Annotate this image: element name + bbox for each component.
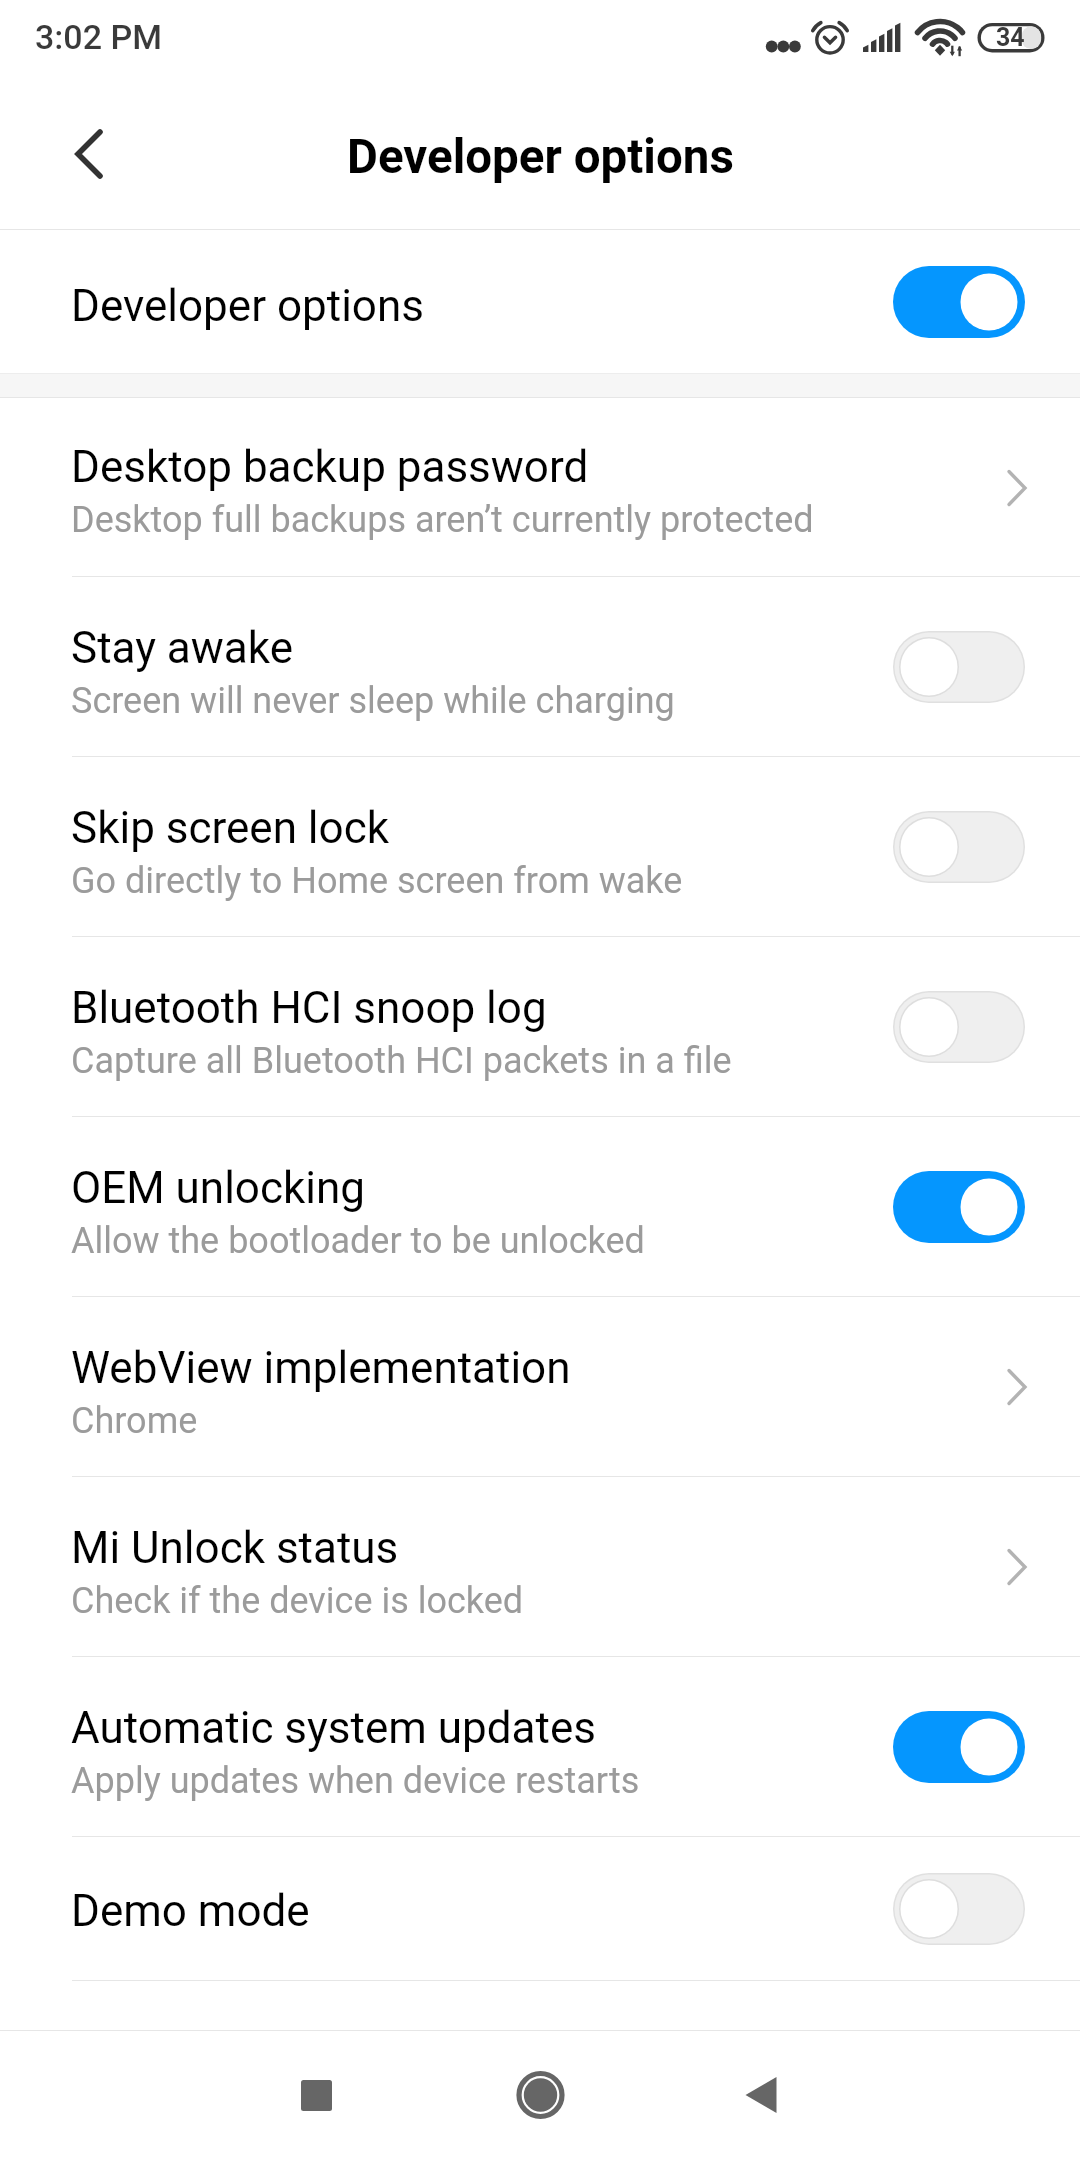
button[interactable]: Skip screen lock	[0, 757, 1080, 937]
button[interactable]: Toggle off	[893, 631, 1025, 703]
staticText: Bluetooth HCI snoop log	[71, 982, 547, 1034]
button[interactable]: Open	[985, 452, 1025, 524]
staticText: Mi Unlock status	[71, 1522, 399, 1574]
button[interactable]: Home	[484, 2039, 596, 2151]
button[interactable]: Developer options	[0, 230, 1080, 373]
staticText: Desktop full backups aren’t currently pr…	[71, 499, 814, 541]
button[interactable]: Stay awake	[0, 577, 1080, 757]
button[interactable]: Mi Unlock status	[0, 1477, 1080, 1657]
button[interactable]: Desktop backup password	[0, 398, 1080, 577]
staticText: Capture all Bluetooth HCI packets in a f…	[71, 1040, 732, 1082]
staticText: OEM unlocking	[71, 1162, 365, 1214]
button[interactable]: Automatic system updates	[0, 1657, 1080, 1837]
staticText: Demo mode	[71, 1885, 310, 1937]
staticText: 34	[996, 23, 1025, 52]
staticText: Skip screen lock	[71, 802, 389, 854]
button[interactable]: Toggle off	[893, 991, 1025, 1063]
button[interactable]: Back	[57, 107, 121, 201]
button[interactable]: Bluetooth HCI snoop log	[0, 937, 1080, 1117]
staticText: Automatic system updates	[71, 1702, 596, 1754]
staticText: Go directly to Home screen from wake	[71, 860, 683, 902]
button[interactable]: Open	[985, 1351, 1025, 1423]
staticText: Desktop backup password	[71, 441, 589, 493]
button[interactable]: Open	[985, 1531, 1025, 1603]
staticText: Chrome	[71, 1400, 198, 1442]
staticText: Check if the device is locked	[71, 1580, 524, 1622]
button[interactable]: Toggle on	[893, 1171, 1025, 1243]
staticText: Stay awake	[71, 622, 293, 674]
staticText: WebView implementation	[71, 1342, 571, 1394]
staticText: Developer options	[347, 129, 734, 185]
button[interactable]: WebView implementation	[0, 1297, 1080, 1477]
button[interactable]: Toggle off	[893, 811, 1025, 883]
button[interactable]: Toggle on	[893, 266, 1025, 338]
staticText: Allow the bootloader to be unlocked	[71, 1220, 645, 1262]
button[interactable]: Recent apps	[260, 2039, 372, 2151]
button[interactable]: Toggle on	[893, 1711, 1025, 1783]
staticText: Apply updates when device restarts	[71, 1760, 640, 1802]
button[interactable]: OEM unlocking	[0, 1117, 1080, 1297]
button[interactable]: Demo mode	[0, 1837, 1080, 1981]
button[interactable]: Back	[705, 2039, 817, 2151]
staticText: Screen will never sleep while charging	[71, 680, 675, 722]
staticText: 3:02 PM	[35, 17, 162, 57]
button[interactable]: Toggle off	[893, 1873, 1025, 1945]
staticText: Developer options	[71, 280, 424, 332]
